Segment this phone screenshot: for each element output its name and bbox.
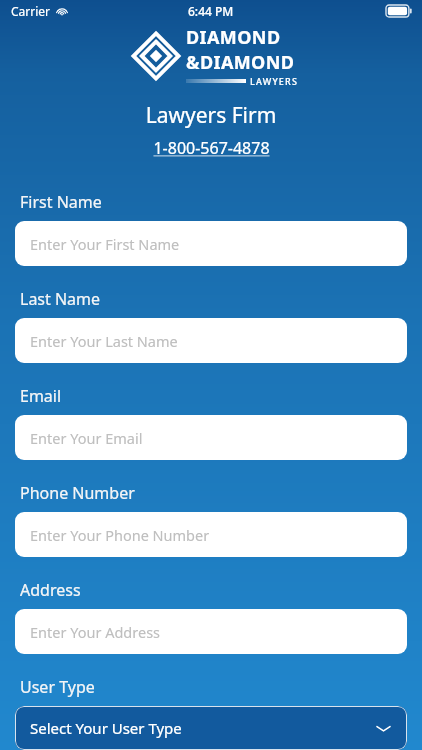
staticText: User Type (20, 676, 95, 698)
staticText: Select Your User Type (30, 718, 182, 738)
staticText: Phone Number (20, 482, 135, 504)
staticText: Enter Your Address (30, 622, 161, 642)
staticText: Enter Your Phone Number (30, 525, 210, 545)
staticText: &DIAMOND (186, 50, 295, 75)
staticText: Last Name (20, 288, 101, 310)
button[interactable]: Enter Your Email (15, 415, 407, 460)
staticText: Enter Your Last Name (30, 331, 178, 351)
staticText: Carrier (11, 3, 51, 19)
button[interactable]: Select Your User Type (15, 706, 407, 750)
button[interactable]: 1-800-567-4878 (153, 137, 270, 159)
button[interactable]: Enter Your Address (15, 609, 407, 654)
staticText: LAWYERS (250, 75, 299, 87)
button[interactable]: Enter Your Last Name (15, 318, 407, 363)
button[interactable]: Enter Your Phone Number (15, 512, 407, 557)
staticText: Email (20, 385, 62, 407)
staticText: 6:44 PM (188, 3, 234, 19)
staticText: Enter Your First Name (30, 234, 180, 254)
staticText: First Name (20, 191, 102, 213)
button[interactable]: Enter Your First Name (15, 221, 407, 266)
staticText: Enter Your Email (30, 428, 143, 448)
staticText: Address (20, 579, 81, 601)
staticText: Lawyers Firm (0, 101, 422, 130)
staticText: DIAMOND (186, 25, 281, 50)
